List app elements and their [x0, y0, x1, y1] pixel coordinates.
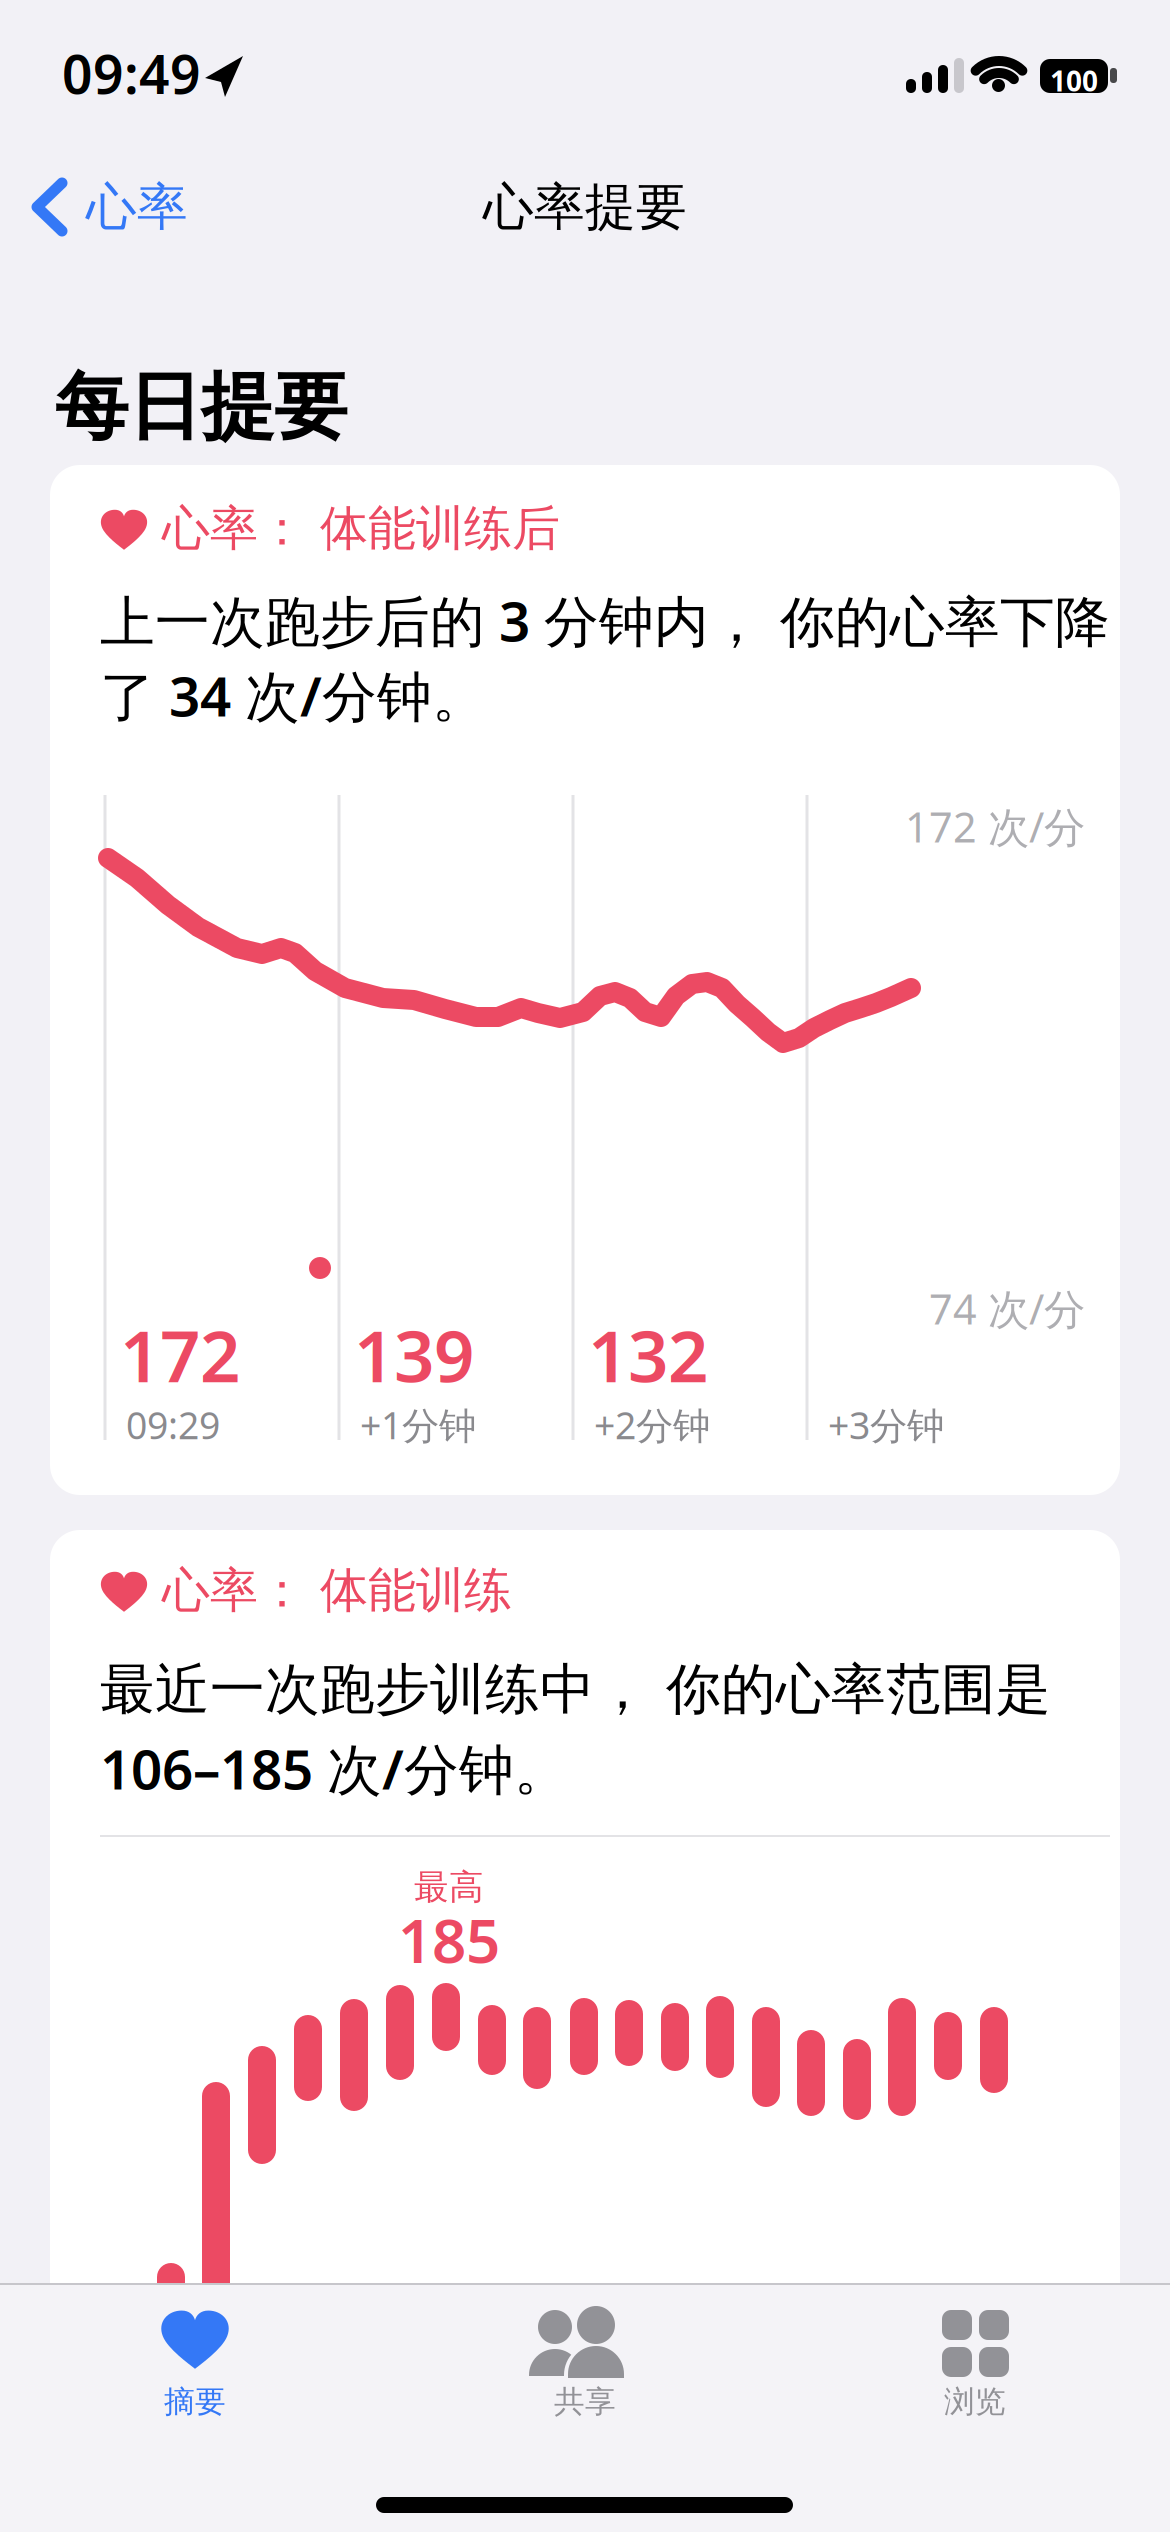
staticText: 摘要 — [164, 2383, 226, 2421]
staticText: +2分钟 — [594, 1400, 710, 1450]
button[interactable]: 浏览 — [780, 2283, 1170, 2443]
staticText: 了 34 次/分钟。 — [100, 659, 487, 732]
staticText: 浏览 — [944, 2383, 1006, 2421]
staticText: 172 — [120, 1308, 240, 1402]
staticText: 心率 — [86, 176, 188, 238]
staticText: 139 — [354, 1308, 474, 1402]
staticText: 上一次跑步后的 3 分钟内， 你的心率下降 — [100, 584, 1110, 657]
staticText: +3分钟 — [828, 1400, 944, 1450]
staticText: 最高 — [414, 1866, 484, 1909]
staticText: 最近一次跑步训练中， 你的心率范围是 — [100, 1656, 1051, 1723]
staticText: 09:29 — [126, 1400, 220, 1450]
staticText: 心率提要 — [483, 176, 687, 238]
staticText: 172 次/分 — [905, 799, 1085, 854]
staticText: 132 — [588, 1308, 708, 1402]
staticText: 共享 — [554, 2383, 616, 2421]
button[interactable]: 共享 — [390, 2283, 780, 2443]
staticText: +1分钟 — [360, 1400, 476, 1450]
button[interactable]: 心率： 体能训练后 — [50, 465, 1120, 1495]
staticText: 心率： 体能训练后 — [162, 499, 560, 558]
staticText: 心率： 体能训练 — [162, 1561, 512, 1620]
button[interactable]: 心率： 体能训练 — [50, 1530, 1120, 2330]
button[interactable]: 返回 心率 — [0, 0, 200, 110]
staticText: 100 — [1050, 62, 1098, 99]
staticText: 106–185 次/分钟。 — [100, 1732, 569, 1805]
staticText: 09:49 — [62, 38, 201, 109]
staticText: 每日提要 — [55, 362, 347, 452]
staticText: 74 次/分 — [929, 1281, 1085, 1336]
button[interactable]: 摘要 — [0, 2283, 390, 2443]
staticText: 185 — [398, 1900, 500, 1980]
